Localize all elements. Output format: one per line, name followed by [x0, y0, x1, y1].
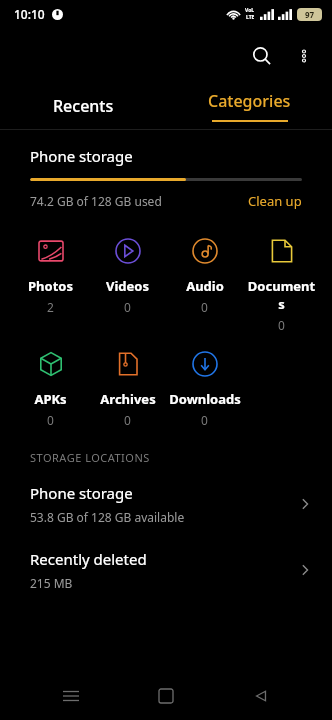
staticText: Categories: [208, 90, 291, 112]
staticText: Downloads: [169, 390, 241, 408]
button[interactable]: Recently deleted: [0, 545, 332, 595]
staticText: Audio: [186, 277, 224, 295]
staticText: Recently deleted: [30, 549, 147, 569]
staticText: 0: [124, 299, 131, 315]
staticText: 0: [201, 299, 208, 315]
staticText: STORAGE LOCATIONS: [30, 450, 150, 465]
staticText: 2: [47, 299, 54, 315]
staticText: 215 MB: [30, 575, 73, 591]
staticText: 0: [124, 412, 131, 428]
staticText: 53.8 GB of 128 GB available: [30, 509, 185, 525]
button[interactable]: Videos: [89, 236, 166, 315]
staticText: Photos: [28, 277, 73, 295]
staticText: Documents: [245, 277, 318, 313]
button[interactable]: More options: [284, 36, 324, 76]
staticText: 0: [201, 412, 208, 428]
staticText: Videos: [106, 277, 149, 295]
staticText: VoL: [245, 7, 255, 14]
button[interactable]: Phone storage: [0, 479, 332, 529]
staticText: 74.2 GB of 128 GB used: [30, 193, 162, 209]
staticText: APKs: [34, 390, 67, 408]
button[interactable]: Categories: [166, 84, 332, 128]
button[interactable]: Recent apps: [47, 672, 95, 720]
button[interactable]: Archives: [89, 349, 166, 428]
staticText: Clean up: [248, 192, 302, 210]
button[interactable]: Downloads: [166, 349, 243, 428]
staticText: 10:10: [14, 6, 45, 22]
staticText: Archives: [100, 390, 156, 408]
button[interactable]: Audio: [166, 236, 243, 315]
button[interactable]: Clean up: [248, 192, 302, 210]
button[interactable]: Home: [142, 672, 190, 720]
staticText: Recents: [53, 95, 114, 117]
staticText: Phone storage: [30, 483, 133, 503]
staticText: 0: [278, 317, 285, 333]
button[interactable]: Recents: [0, 84, 166, 128]
button[interactable]: APKs: [12, 349, 89, 428]
button[interactable]: Documents: [243, 236, 320, 333]
staticText: Phone storage: [30, 146, 133, 166]
button[interactable]: Photos: [12, 236, 89, 315]
staticText: LTE: [246, 14, 255, 21]
button[interactable]: Back: [237, 672, 285, 720]
button[interactable]: Search: [240, 34, 284, 78]
staticText: 97: [305, 9, 315, 20]
staticText: 0: [47, 412, 54, 428]
